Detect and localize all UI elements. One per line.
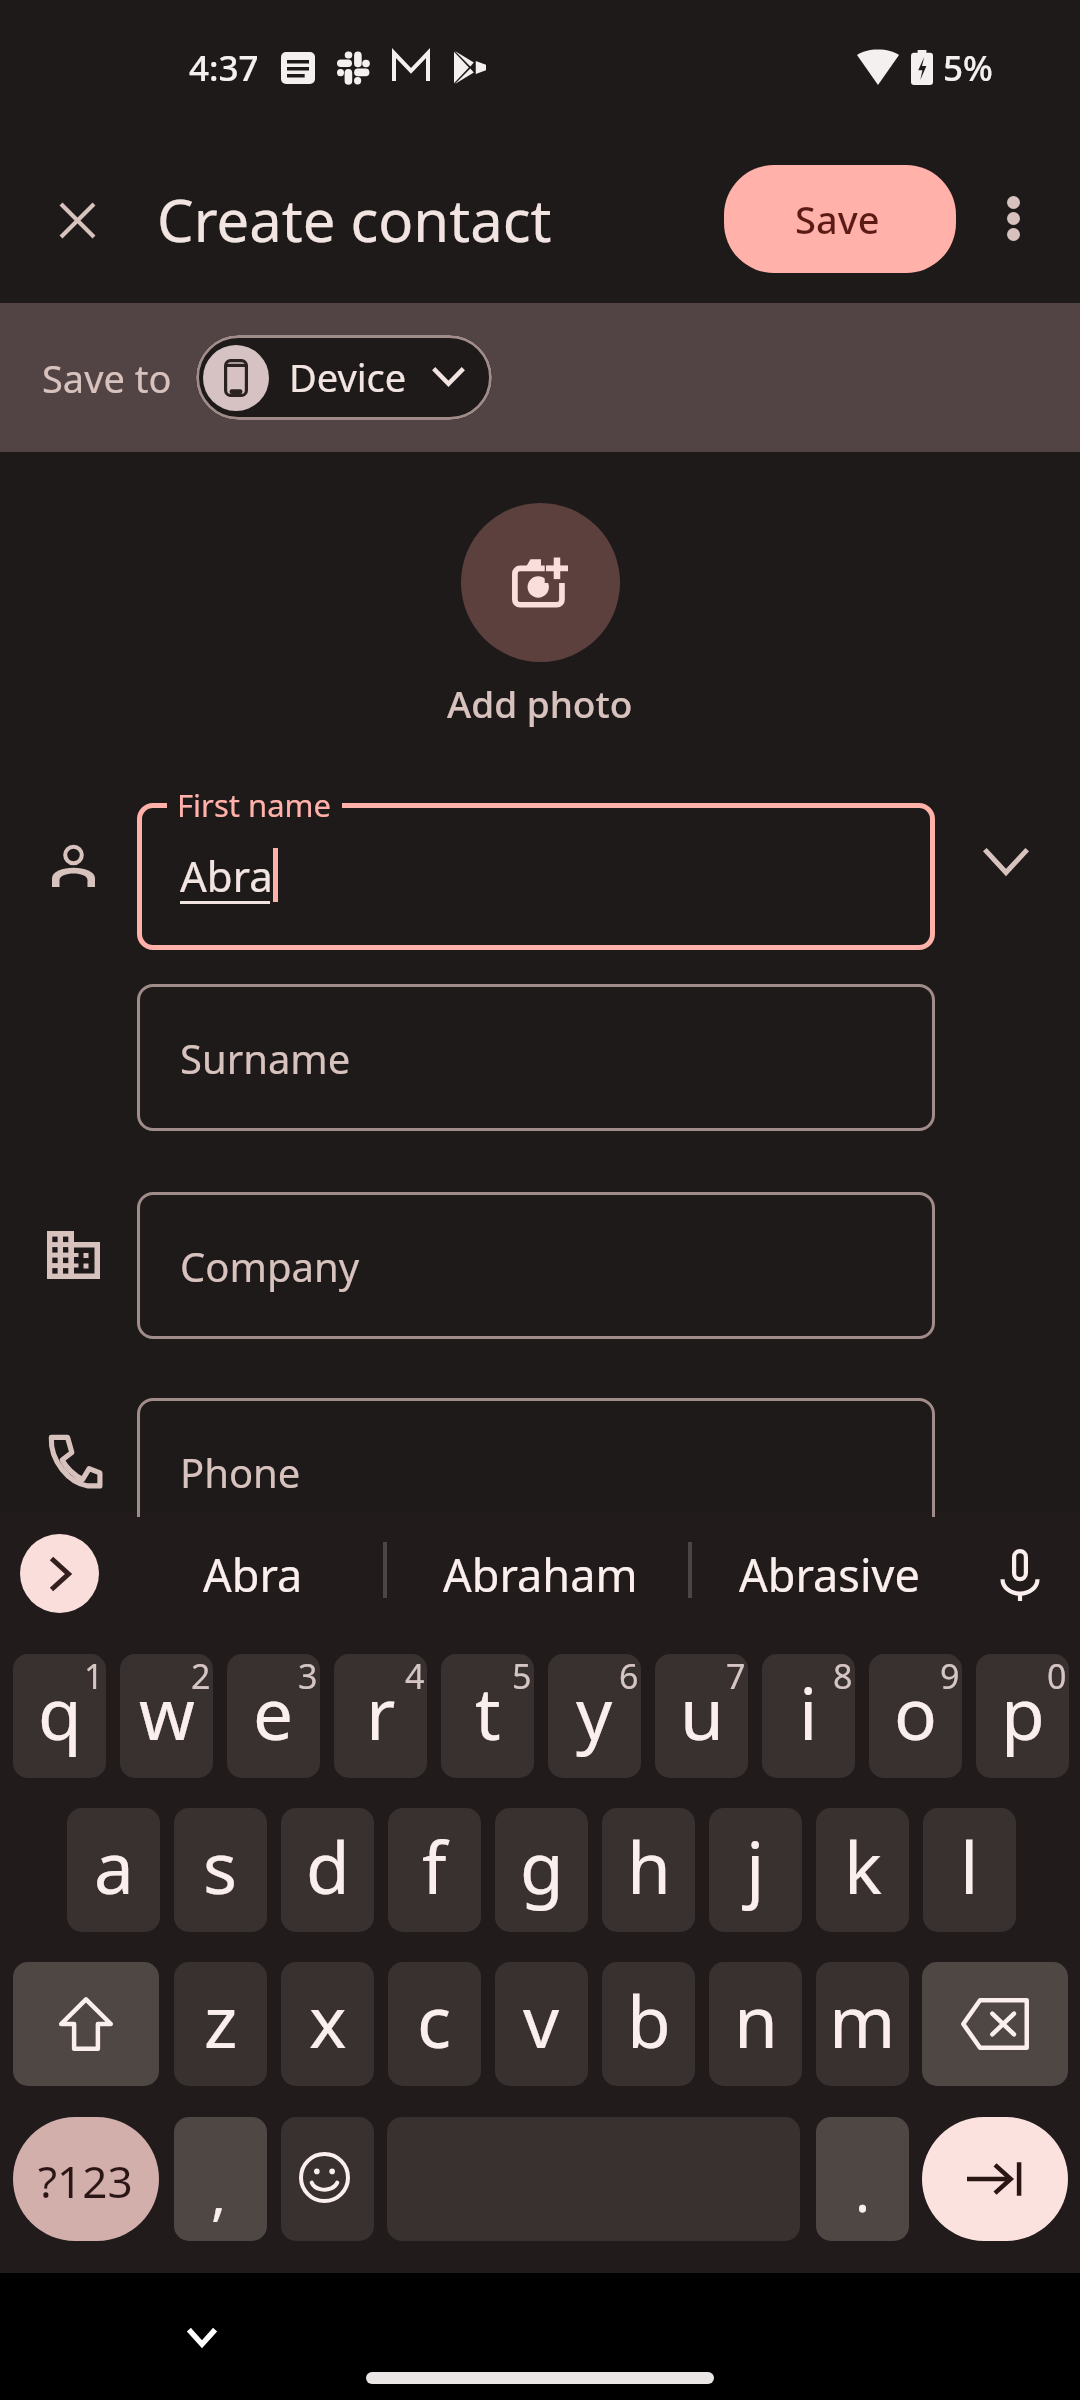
button[interactable]: c — [388, 1962, 481, 2086]
staticText: Company — [180, 1239, 360, 1293]
button[interactable]: Voice input — [978, 1534, 1058, 1614]
staticText: . — [855, 2152, 871, 2228]
button[interactable]: o — [869, 1654, 962, 1778]
button[interactable]: Next — [922, 2117, 1068, 2241]
staticText: Abra — [203, 1544, 303, 1605]
button[interactable]: Abraham — [390, 1512, 690, 1636]
staticText: q — [38, 1664, 82, 1761]
staticText: Device — [289, 351, 407, 403]
staticText: 5 — [512, 1654, 532, 1699]
button[interactable]: e — [227, 1654, 320, 1778]
button[interactable]: w — [120, 1654, 213, 1778]
button[interactable]: d — [281, 1808, 374, 1932]
button[interactable]: Comma — [174, 2117, 267, 2241]
staticText: t — [475, 1664, 501, 1761]
staticText: 8 — [833, 1654, 853, 1699]
staticText: i — [799, 1664, 818, 1761]
button[interactable]: Phone — [137, 1398, 935, 1517]
staticText: Abraham — [443, 1544, 638, 1605]
staticText: Abrasive — [739, 1544, 920, 1605]
staticText: 3 — [298, 1654, 318, 1699]
staticText: Surname — [180, 1031, 351, 1085]
button[interactable]: b — [602, 1962, 695, 2086]
button[interactable]: t — [441, 1654, 534, 1778]
staticText: y — [576, 1664, 613, 1761]
button[interactable]: v — [495, 1962, 588, 2086]
button[interactable]: Company — [137, 1192, 935, 1339]
button[interactable]: Close — [28, 167, 124, 263]
staticText: a — [94, 1818, 134, 1915]
staticText: p — [1001, 1664, 1045, 1761]
staticText: 2 — [191, 1654, 211, 1699]
button[interactable]: m — [816, 1962, 909, 2086]
button[interactable]: Expand name fields — [961, 817, 1051, 907]
staticText: l — [960, 1818, 979, 1915]
button[interactable]: n — [709, 1962, 802, 2086]
staticText: r — [366, 1664, 396, 1761]
staticText: u — [680, 1664, 724, 1761]
staticText: d — [306, 1818, 350, 1915]
button[interactable]: h — [602, 1808, 695, 1932]
staticText: j — [746, 1818, 765, 1915]
button[interactable] — [137, 803, 935, 950]
button[interactable]: l — [923, 1808, 1016, 1932]
button[interactable]: Device — [196, 335, 492, 420]
button[interactable]: More suggestions — [20, 1534, 99, 1613]
staticText: First name — [177, 784, 332, 826]
button[interactable]: k — [816, 1808, 909, 1932]
staticText: o — [894, 1664, 937, 1761]
button[interactable]: Surname — [137, 984, 935, 1131]
button[interactable]: p — [976, 1654, 1069, 1778]
button[interactable]: Save — [724, 165, 956, 273]
button[interactable]: x — [281, 1962, 374, 2086]
button[interactable]: g — [495, 1808, 588, 1932]
staticText: 1 — [84, 1654, 104, 1699]
button[interactable]: j — [709, 1808, 802, 1932]
button[interactable]: i — [762, 1654, 855, 1778]
staticText: h — [627, 1818, 671, 1915]
button[interactable]: Delete — [922, 1962, 1068, 2086]
button[interactable]: q — [13, 1654, 106, 1778]
button[interactable]: z — [174, 1962, 267, 2086]
button[interactable]: More options — [968, 167, 1064, 263]
button[interactable]: y — [548, 1654, 641, 1778]
staticText: Phone — [180, 1445, 301, 1499]
staticText: m — [829, 1972, 896, 2069]
staticText: z — [204, 1972, 238, 2069]
button[interactable]: Period — [816, 2117, 909, 2241]
staticText: 9 — [940, 1654, 960, 1699]
staticText: 5% — [943, 44, 993, 92]
staticText: f — [422, 1818, 447, 1915]
staticText: , — [211, 2155, 227, 2231]
button[interactable]: a — [67, 1808, 160, 1932]
staticText: 7 — [726, 1654, 746, 1699]
staticText: Save to — [42, 352, 172, 404]
staticText: k — [844, 1818, 882, 1915]
staticText: e — [253, 1664, 294, 1761]
staticText: 4 — [405, 1654, 425, 1699]
staticText: 6 — [619, 1654, 639, 1699]
staticText: w — [139, 1664, 195, 1761]
staticText: b — [627, 1972, 671, 2069]
staticText: Add photo — [447, 678, 633, 728]
staticText: x — [309, 1972, 347, 2069]
staticText: n — [734, 1972, 778, 2069]
staticText: c — [417, 1972, 452, 2069]
button[interactable]: Abra — [120, 1512, 386, 1636]
staticText: 4:37 — [189, 44, 259, 92]
button[interactable]: r — [334, 1654, 427, 1778]
button[interactable]: Add photo — [447, 503, 633, 728]
button[interactable]: Hide keyboard — [160, 2296, 244, 2380]
button[interactable]: Abrasive — [694, 1512, 964, 1636]
button[interactable]: f — [388, 1808, 481, 1932]
button[interactable]: s — [174, 1808, 267, 1932]
staticText: v — [523, 1972, 560, 2069]
staticText: 0 — [1047, 1654, 1067, 1699]
staticText: g — [520, 1818, 564, 1915]
button[interactable]: Emoji — [281, 2117, 374, 2241]
button[interactable]: Shift — [13, 1962, 159, 2086]
button[interactable]: ?123 — [13, 2117, 159, 2241]
button[interactable]: u — [655, 1654, 748, 1778]
staticText: Save — [795, 193, 880, 245]
